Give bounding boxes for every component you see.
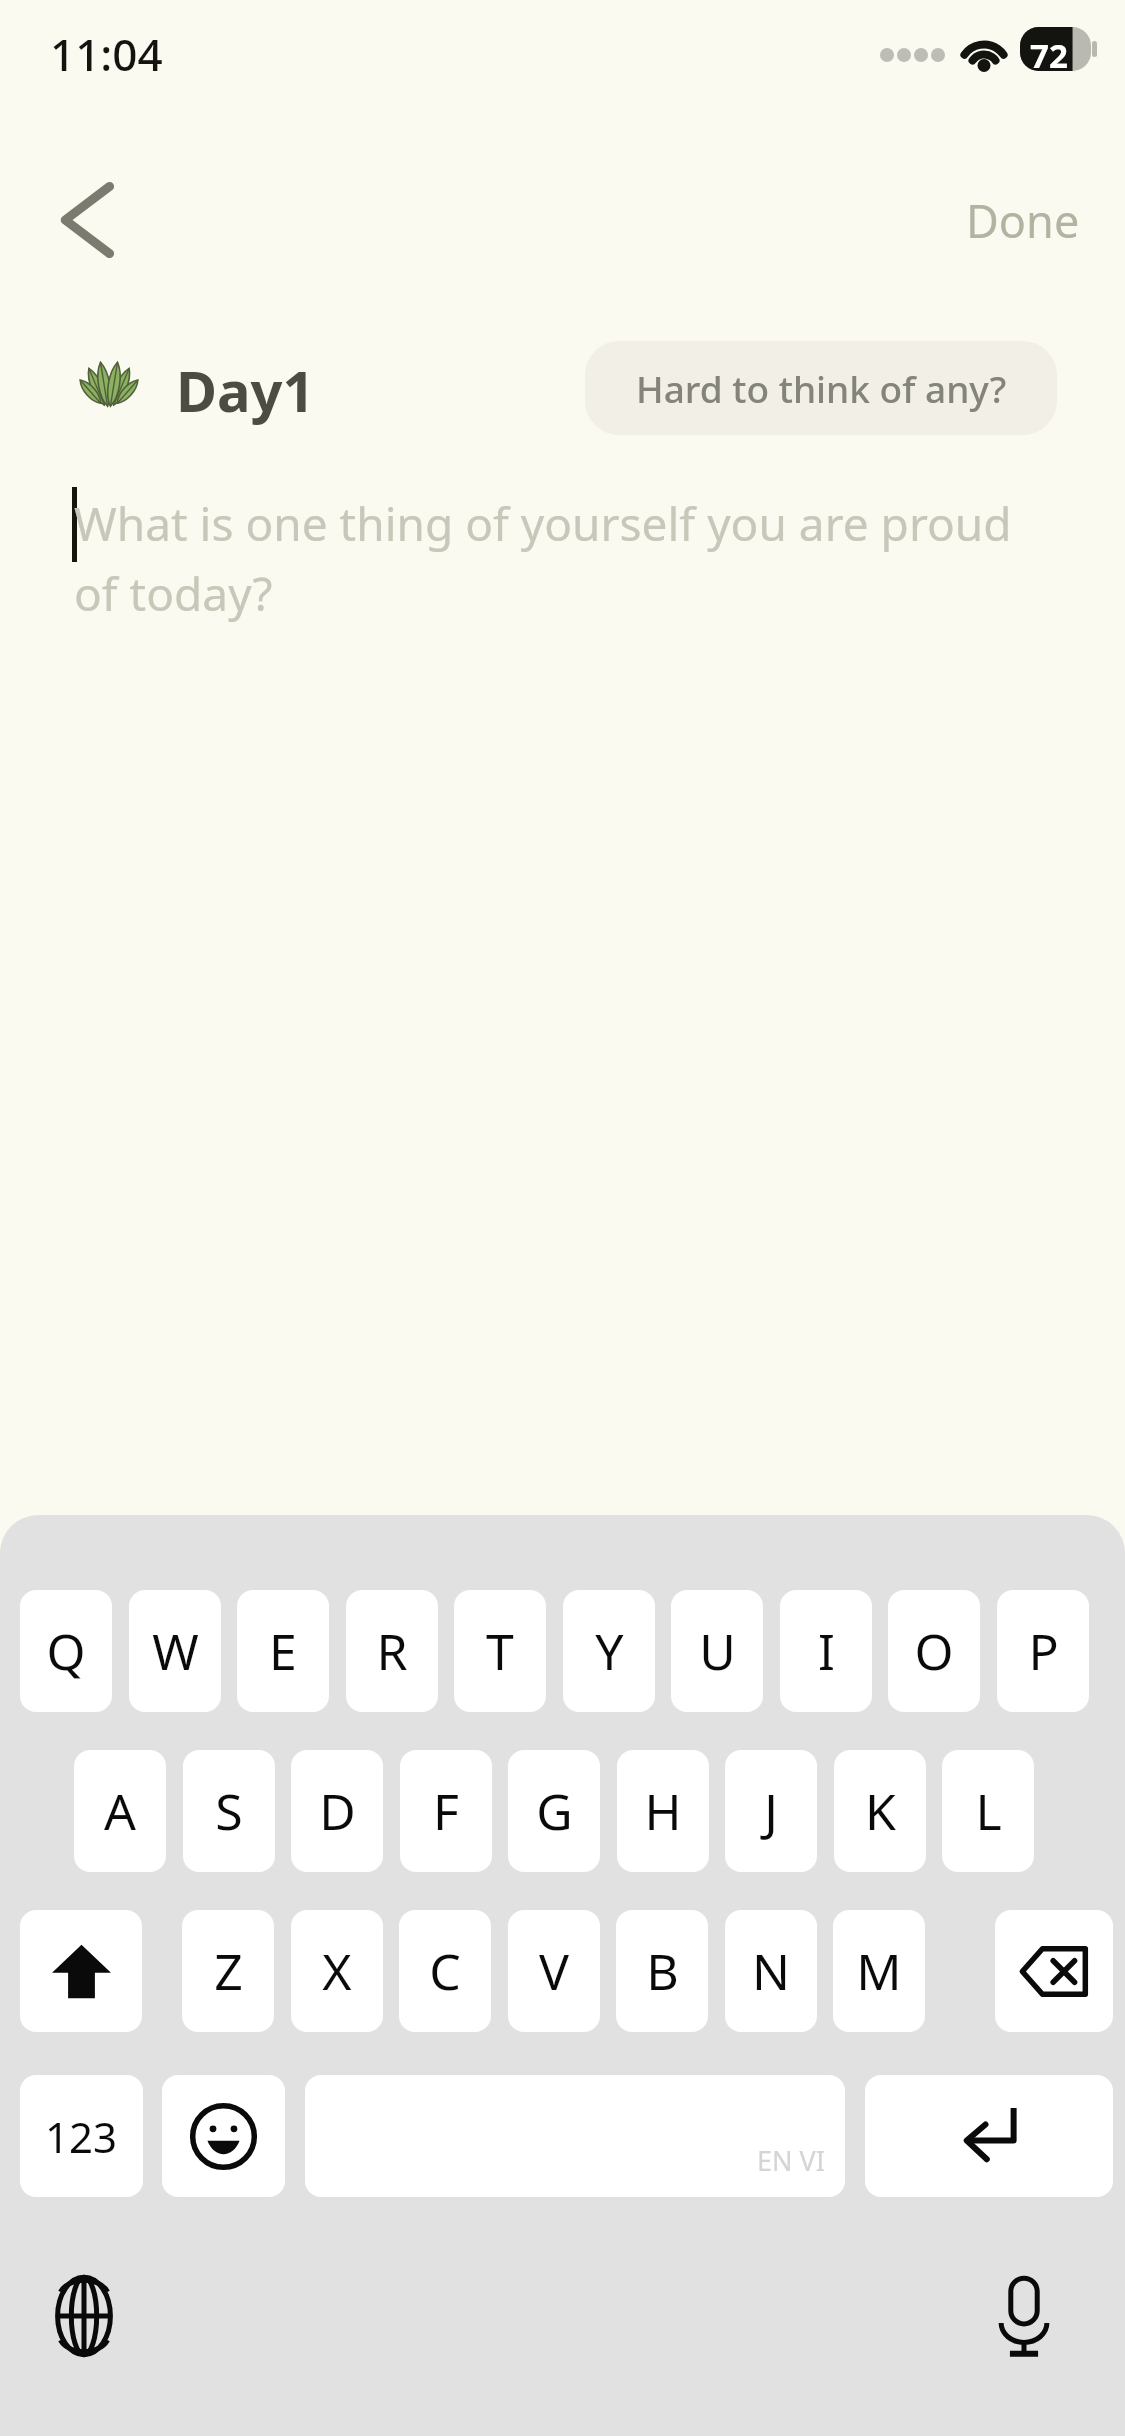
staticText: V (539, 1937, 569, 2005)
staticText: E (269, 1617, 297, 1685)
button[interactable]: Emoji (162, 2075, 285, 2197)
staticText: W (152, 1617, 199, 1685)
button[interactable]: O (888, 1590, 980, 1712)
staticText: T (486, 1617, 514, 1685)
staticText: Day1 (176, 352, 315, 428)
button[interactable]: N (725, 1910, 817, 2032)
staticText: K (865, 1777, 896, 1845)
staticText: X (322, 1937, 352, 2005)
staticText: B (646, 1937, 679, 2005)
button[interactable]: Back (22, 160, 142, 280)
staticText: O (914, 1617, 954, 1685)
button[interactable]: Space (305, 2075, 845, 2197)
button[interactable]: P (997, 1590, 1089, 1712)
staticText: C (429, 1937, 461, 2005)
button[interactable]: Backspace (995, 1910, 1113, 2032)
button[interactable]: E (237, 1590, 329, 1712)
staticText: I (818, 1617, 835, 1685)
staticText: 72 (1030, 33, 1068, 78)
button[interactable]: W (129, 1590, 221, 1712)
button[interactable]: R (346, 1590, 438, 1712)
staticText: D (319, 1777, 356, 1845)
button[interactable]: G (508, 1750, 600, 1872)
button[interactable]: Voice input (980, 2272, 1068, 2360)
button[interactable]: I (780, 1590, 872, 1712)
staticText: L (975, 1777, 1002, 1845)
button[interactable]: L (942, 1750, 1034, 1872)
staticText: N (752, 1937, 790, 2005)
button[interactable]: What is one thing of yourself you are pr… (74, 492, 1054, 624)
staticText: 11:04 (50, 24, 163, 84)
staticText: S (215, 1777, 243, 1845)
button[interactable]: H (617, 1750, 709, 1872)
staticText: EN VI (757, 2142, 825, 2179)
button[interactable]: S (183, 1750, 275, 1872)
button[interactable]: U (671, 1590, 763, 1712)
staticText: Z (214, 1937, 243, 2005)
button[interactable]: Z (182, 1910, 274, 2032)
button[interactable]: D (291, 1750, 383, 1872)
button[interactable]: A (74, 1750, 166, 1872)
staticText: J (764, 1777, 778, 1845)
button[interactable]: B (616, 1910, 708, 2032)
button[interactable]: Q (20, 1590, 112, 1712)
button[interactable]: 123 (20, 2075, 143, 2197)
button[interactable]: C (399, 1910, 491, 2032)
staticText: 123 (45, 2108, 118, 2165)
staticText: M (856, 1937, 902, 2005)
staticText: R (376, 1617, 408, 1685)
staticText: H (644, 1777, 682, 1845)
button[interactable]: X (291, 1910, 383, 2032)
button[interactable]: Y (563, 1590, 655, 1712)
staticText: U (699, 1617, 736, 1685)
button[interactable]: V (508, 1910, 600, 2032)
button[interactable]: M (833, 1910, 925, 2032)
button[interactable]: Switch language (40, 2272, 128, 2360)
staticText: Q (46, 1617, 86, 1685)
staticText: G (536, 1777, 573, 1845)
button[interactable]: J (725, 1750, 817, 1872)
staticText: F (433, 1777, 459, 1845)
button[interactable]: Done (945, 175, 1100, 265)
staticText: What is one thing of yourself you are pr… (74, 492, 1054, 624)
staticText: Hard to think of any? (636, 363, 1007, 413)
staticText: P (1028, 1617, 1059, 1685)
staticText: Y (595, 1617, 624, 1685)
button[interactable]: Enter (865, 2075, 1113, 2197)
button[interactable]: K (834, 1750, 926, 1872)
button[interactable]: F (400, 1750, 492, 1872)
button[interactable]: Hard to think of any? (585, 341, 1057, 435)
button[interactable]: T (454, 1590, 546, 1712)
staticText: Done (966, 190, 1080, 251)
staticText: A (104, 1777, 136, 1845)
button[interactable]: Shift (20, 1910, 142, 2032)
